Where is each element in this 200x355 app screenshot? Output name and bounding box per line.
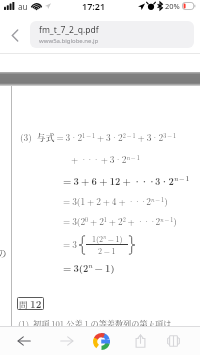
button[interactable]: Share — [128, 327, 152, 355]
staticText: 2 − 1 — [98, 245, 116, 256]
button[interactable]: Tabs — [161, 327, 185, 355]
staticText: au — [18, 1, 28, 12]
staticText: fm_t_7_2_q.pdf — [39, 24, 99, 36]
staticText: (1) 初項 101 公差 1 の等差数列の第 k 項は — [18, 317, 172, 329]
staticText: = 3 — [63, 238, 77, 251]
button[interactable]: fm_t_7_2_q.pdf — [30, 21, 194, 48]
staticText: 問 — [19, 298, 28, 310]
button[interactable]: Forward — [54, 327, 80, 355]
staticText: = 3 + 6 + 12 + ···3·2n − 1 — [63, 174, 190, 187]
staticText: 1(2n − 1) — [92, 233, 123, 244]
staticText: 12 — [30, 297, 42, 310]
staticText: = 3(2n − 1) — [63, 261, 115, 274]
staticText: = 3(1 + 2 + 4 + ···2n − 1) — [63, 195, 168, 208]
staticText: (3) 与式 = 3·21 − 1 + 3·22 − 1 + 3·23 − 1 — [20, 131, 177, 144]
staticText: 20% — [165, 1, 180, 11]
button[interactable]: Back — [5, 25, 25, 45]
button[interactable]: Google — [88, 327, 114, 355]
staticText: の — [0, 246, 7, 260]
button[interactable]: Back — [11, 327, 37, 355]
staticText: = 3(20 + 21 + 22 + ···2n − 1) — [63, 215, 177, 228]
staticText: www5a.biglobe.ne.jp — [39, 37, 99, 45]
staticText: 17:21 — [82, 0, 106, 12]
staticText: + ··· + 3·2n − 1 — [71, 153, 140, 166]
